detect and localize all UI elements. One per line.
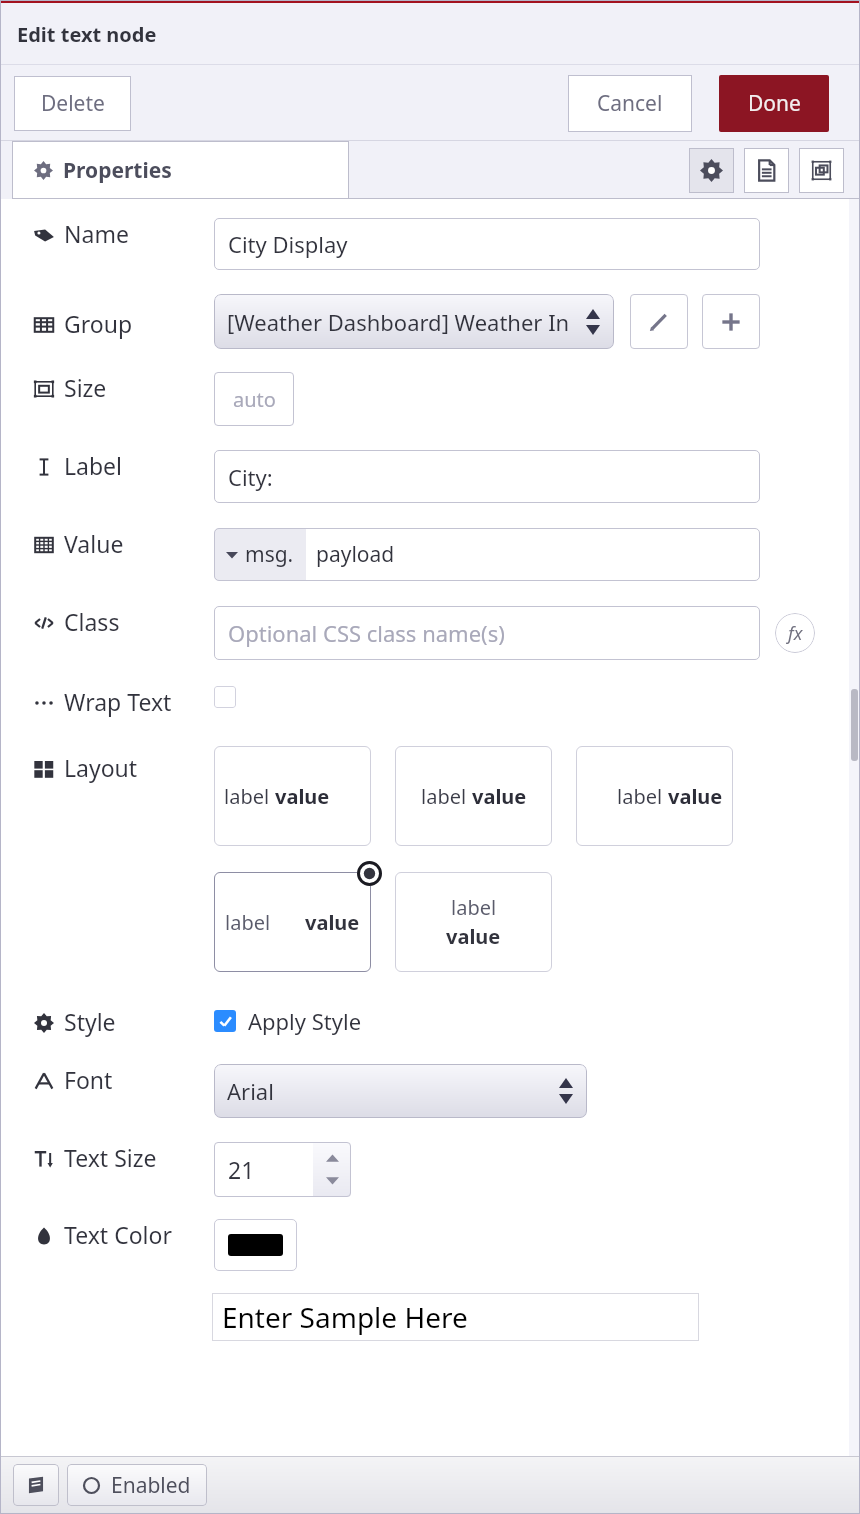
staticText: [Weather Dashboard] Weather In (227, 307, 570, 337)
staticText: label (421, 783, 467, 810)
staticText: value (446, 923, 501, 950)
button[interactable]: [Weather Dashboard] Weather In (214, 294, 614, 349)
staticText: Class (64, 606, 120, 637)
staticText: value (668, 783, 723, 810)
button[interactable]: Layout option 3 (576, 746, 733, 846)
staticText: Style (64, 1006, 116, 1037)
staticText: payload (316, 540, 395, 569)
button[interactable]: Delete (14, 76, 131, 131)
staticText: Edit text node (17, 21, 157, 48)
staticText: 21 (228, 1154, 255, 1185)
staticText: Label (64, 450, 123, 481)
staticText: Apply Style (248, 1006, 362, 1036)
button[interactable]: Properties (12, 141, 349, 199)
staticText: value (472, 783, 527, 810)
button[interactable]: Description (744, 148, 789, 193)
staticText: value (275, 783, 330, 810)
staticText: Cancel (597, 89, 663, 118)
staticText: Size (64, 372, 107, 403)
staticText: Text Color (64, 1219, 172, 1250)
button[interactable]: Text Color (214, 1219, 297, 1271)
staticText: Name (64, 218, 129, 249)
staticText: Enter Sample Here (222, 1298, 468, 1336)
staticText: Font (64, 1064, 113, 1095)
staticText: Wrap Text (64, 686, 172, 717)
button[interactable]: Apply Style (214, 1006, 362, 1036)
staticText: label (225, 909, 271, 936)
staticText: City Display (228, 229, 348, 259)
button[interactable]: Expression editor (775, 613, 815, 653)
button[interactable]: auto (214, 372, 294, 426)
button[interactable]: Layout option 2 (395, 746, 552, 846)
staticText: msg. (245, 540, 294, 569)
button[interactable]: Enabled (67, 1464, 207, 1506)
staticText: Layout (64, 752, 138, 783)
button[interactable]: Optional CSS class name(s) (214, 606, 760, 660)
staticText: Properties (63, 156, 172, 185)
button[interactable]: Enter Sample Here (212, 1293, 699, 1341)
staticText: Done (748, 89, 801, 118)
staticText: fx (788, 621, 803, 646)
button[interactable]: Properties (689, 148, 734, 193)
staticText: Value (64, 528, 124, 559)
button[interactable]: Layout option 4 (214, 872, 371, 972)
button[interactable]: msg. (214, 528, 760, 581)
staticText: Arial (227, 1076, 274, 1106)
button[interactable]: 21 (214, 1142, 351, 1197)
staticText: value (305, 909, 360, 936)
staticText: Group (64, 308, 133, 339)
button[interactable]: Cancel (568, 75, 692, 132)
button[interactable]: Wrap Text (214, 686, 236, 708)
staticText: Optional CSS class name(s) (228, 618, 505, 648)
button[interactable]: Layout option 5 (395, 872, 552, 972)
button[interactable]: Appearance (799, 148, 844, 193)
staticText: City: (228, 462, 273, 492)
button[interactable]: Done (719, 75, 829, 132)
button[interactable]: Layout option 1 (214, 746, 371, 846)
staticText: label (617, 783, 663, 810)
button[interactable]: City: (214, 450, 760, 503)
button[interactable]: City Display (214, 218, 760, 270)
staticText: Enabled (111, 1471, 191, 1500)
staticText: Text Size (64, 1142, 157, 1173)
button[interactable]: Arial (214, 1064, 587, 1118)
button[interactable]: Edit group (630, 294, 688, 349)
staticText: label (224, 783, 270, 810)
staticText: auto (233, 386, 276, 413)
staticText: Delete (41, 89, 105, 118)
button[interactable]: Add group (702, 294, 760, 349)
staticText: label (451, 894, 497, 921)
button[interactable]: Help (13, 1464, 59, 1506)
